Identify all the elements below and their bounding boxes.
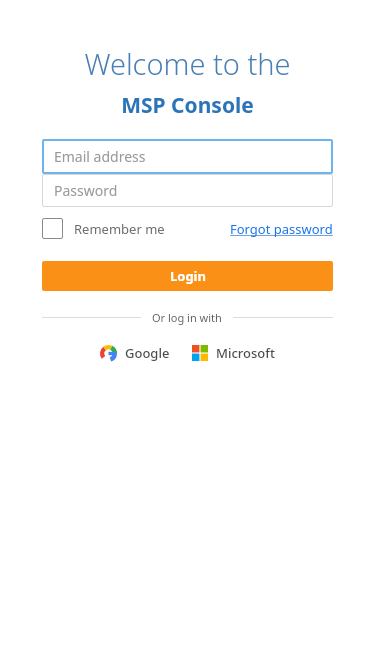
button[interactable]: Remember me xyxy=(42,218,165,239)
staticText: Google xyxy=(125,344,170,362)
staticText: MSP Console xyxy=(0,91,375,120)
button[interactable]: Sign in with Google xyxy=(100,344,170,362)
staticText: Remember me xyxy=(74,220,165,238)
staticText: Or log in with xyxy=(152,310,222,325)
button[interactable]: Login xyxy=(42,261,333,291)
button[interactable]: Forgot password xyxy=(230,220,333,238)
other: Sign in with Microsoft xyxy=(192,345,208,361)
staticText: Login xyxy=(170,267,206,285)
other: Sign in with Google xyxy=(100,345,117,362)
button[interactable]: Sign in with Microsoft xyxy=(192,344,275,362)
button[interactable]: Password xyxy=(42,174,333,207)
staticText: Password xyxy=(54,181,118,200)
button[interactable]: Email address xyxy=(42,139,333,174)
staticText: Microsoft xyxy=(216,344,275,362)
staticText: Forgot password xyxy=(230,220,333,238)
staticText: Welcome to the xyxy=(0,44,375,83)
staticText: Email address xyxy=(54,147,146,166)
